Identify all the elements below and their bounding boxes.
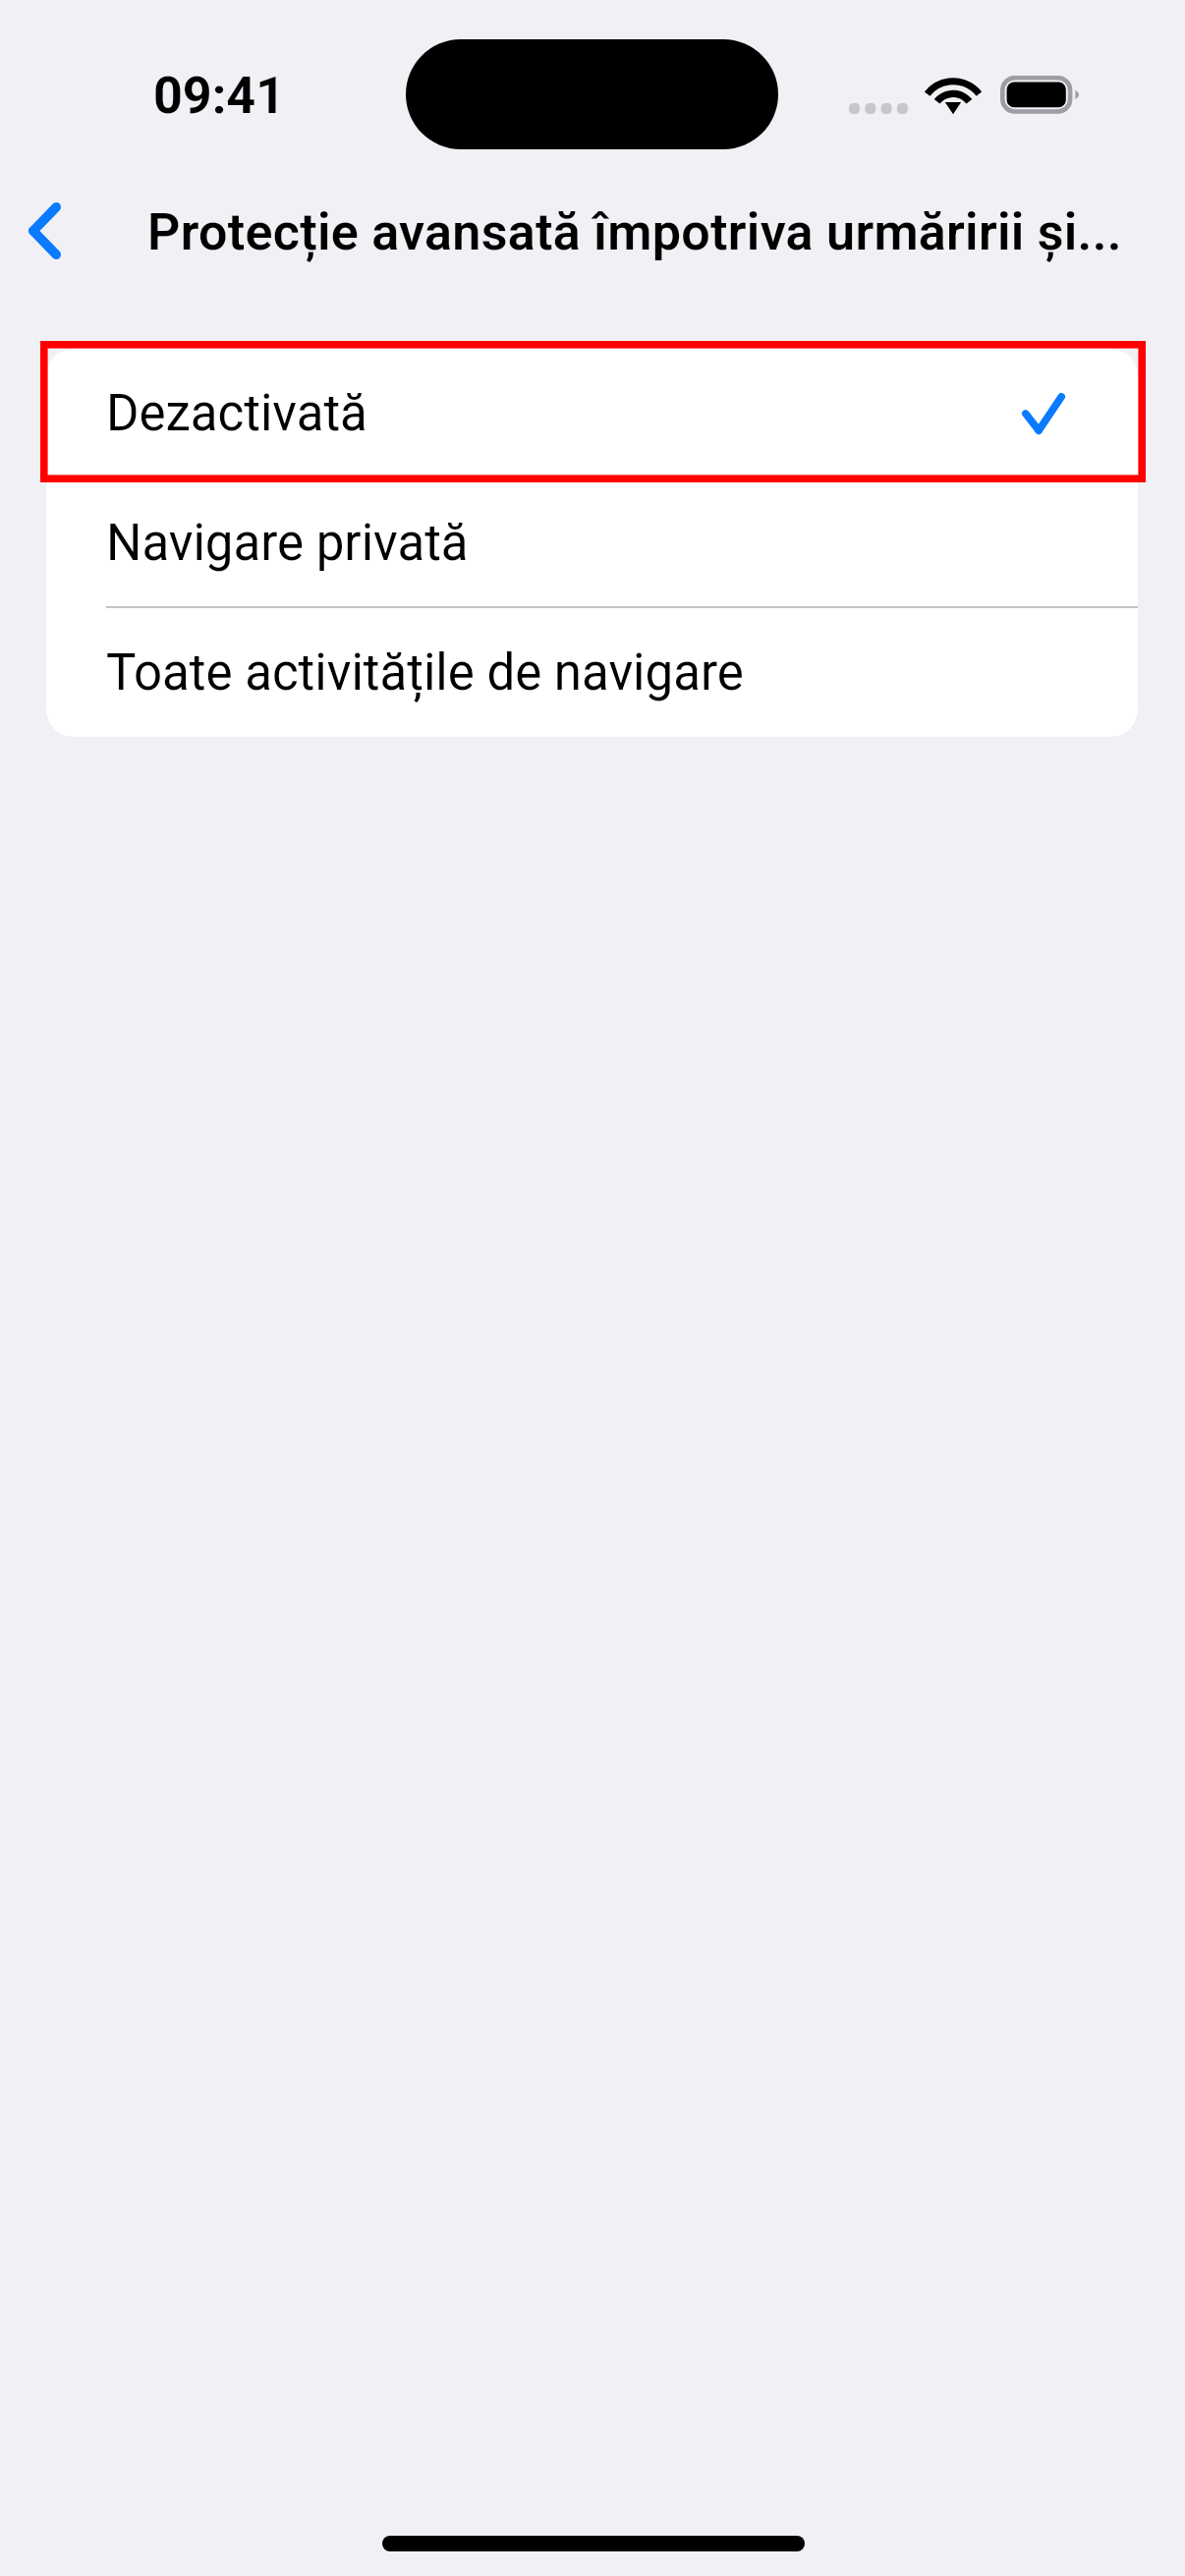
staticText: Protecție avansată împotriva urmăririi ș… [147,202,1130,262]
staticText: Dezactivată [106,384,367,443]
button[interactable]: Dezactivată [46,349,1138,478]
button[interactable]: Navigare privată [46,478,1138,607]
staticText: Toate activitățile de navigare [106,644,744,702]
button[interactable]: Toate activitățile de navigare [46,608,1138,737]
button[interactable]: Back [0,171,88,291]
staticText: Navigare privată [106,514,469,573]
staticText: 09:41 [153,66,285,126]
